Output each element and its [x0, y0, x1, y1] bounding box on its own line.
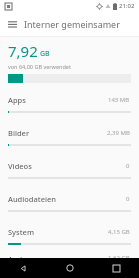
button[interactable]: Audiodateien: [0, 188, 139, 221]
staticText: 0: [126, 162, 130, 170]
button[interactable]: Andere: [0, 254, 139, 258]
staticText: Interner gemeinsamer Speicher: [24, 18, 139, 30]
staticText: 143 MB: [108, 96, 130, 104]
staticText: GB: [40, 49, 50, 59]
staticText: 7,92: [8, 41, 38, 61]
staticText: von 64,00 GB verwendet: [8, 63, 71, 70]
button[interactable]: Zurück: [0, 258, 47, 278]
staticText: 0: [126, 195, 130, 203]
button[interactable]: Apps: [0, 89, 139, 122]
staticText: Andere: [8, 254, 108, 258]
button[interactable]: Bilder: [0, 122, 139, 155]
staticText: 4,15 GB: [108, 228, 130, 236]
button[interactable]: System: [0, 221, 139, 254]
staticText: Videos: [8, 161, 126, 171]
button[interactable]: Übersicht: [93, 258, 139, 278]
button[interactable]: Videos: [0, 155, 139, 188]
staticText: 1,62 GB: [108, 254, 130, 258]
staticText: 2,39 MB: [107, 129, 130, 137]
staticText: 21:02: [119, 2, 135, 10]
staticText: System: [8, 227, 108, 237]
staticText: Audiodateien: [8, 194, 126, 204]
staticText: Bilder: [8, 128, 107, 138]
button[interactable]: Navigation öffnen: [0, 12, 24, 36]
staticText: Apps: [8, 95, 108, 105]
button[interactable]: Startbildschirm: [47, 258, 93, 278]
